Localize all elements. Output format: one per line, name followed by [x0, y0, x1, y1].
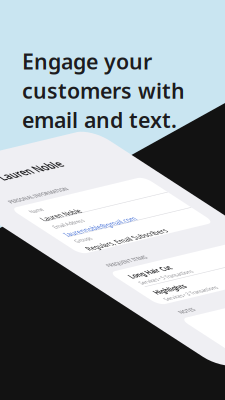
staticText: Lauren Noble — [104, 192, 215, 215]
staticText: Lauren Noble — [150, 52, 225, 87]
staticText: Email Address — [104, 222, 189, 240]
staticText: Name — [104, 168, 141, 186]
staticText: Iaurennoble@gmail.com — [104, 246, 225, 269]
staticText: email and text. — [22, 106, 177, 134]
staticText: Regulars, Email Subscribers — [104, 296, 225, 319]
staticText: PERSONAL INFORMATION — [92, 130, 225, 148]
staticText: Groups — [104, 272, 149, 290]
staticText: FREQUENT ITEMS — [92, 355, 203, 373]
staticText: customers with — [22, 76, 185, 105]
staticText: Engage your — [22, 47, 152, 75]
